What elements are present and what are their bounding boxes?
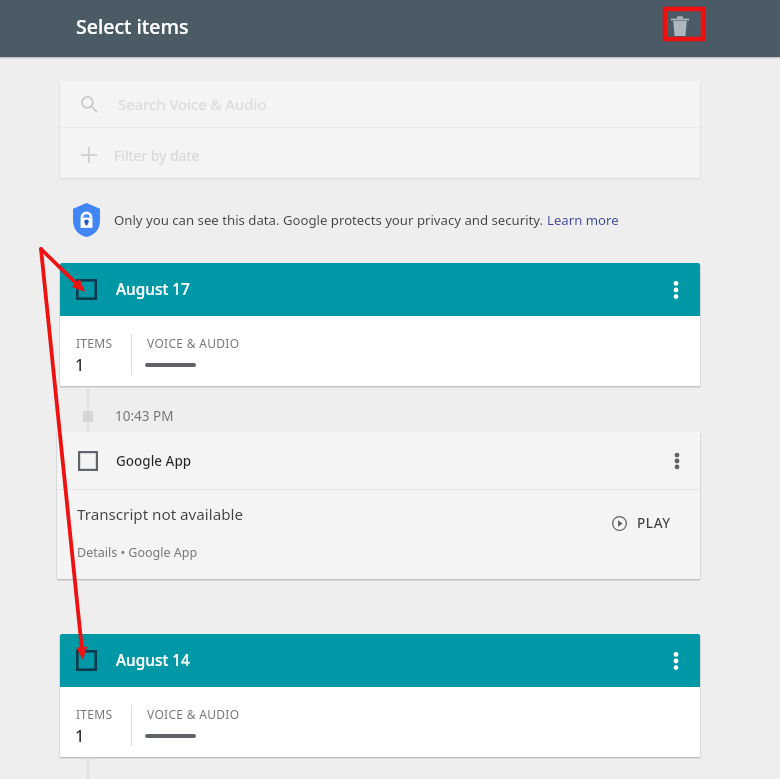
staticText: 10:43 PM [115, 407, 174, 425]
staticText: Google App [116, 452, 192, 470]
staticText: 1 [75, 354, 85, 376]
staticText: Transcript not available [77, 504, 244, 525]
button[interactable]: Search Voice & Audio [60, 81, 700, 127]
staticText: August 14 [116, 650, 190, 671]
button[interactable]: Learn more [547, 211, 619, 229]
staticText: VOICE & AUDIO [147, 706, 240, 722]
button[interactable]: Google App [57, 432, 700, 489]
button[interactable]: More options [656, 440, 698, 482]
staticText: Filter by date [114, 146, 200, 165]
button[interactable]: August 17 [60, 263, 700, 316]
button[interactable]: More options [655, 269, 697, 311]
staticText: Only you can see this data. Google prote… [114, 211, 547, 229]
staticText: ITEMS [76, 706, 113, 722]
button[interactable]: Delete [658, 4, 702, 48]
staticText: VOICE & AUDIO [147, 335, 240, 351]
staticText: ITEMS [76, 335, 113, 351]
staticText: 1 [75, 725, 85, 747]
staticText: August 17 [116, 279, 190, 300]
button[interactable]: PLAY [612, 505, 671, 541]
button[interactable]: August 14 [60, 634, 700, 687]
staticText: Select items [76, 13, 189, 40]
staticText: Search Voice & Audio [118, 94, 267, 114]
staticText: Details • Google App [77, 544, 198, 561]
staticText: PLAY [637, 514, 671, 532]
button[interactable]: More options [655, 640, 697, 682]
